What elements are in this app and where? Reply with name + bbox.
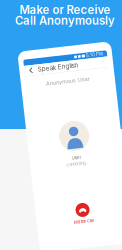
staticText: Connecting... xyxy=(64,162,86,166)
staticText: 5:10 PM xyxy=(96,55,113,60)
staticText: Speak English xyxy=(47,62,88,69)
staticText: Anonymous User xyxy=(53,78,97,84)
staticText: Call Anonymously xyxy=(15,14,115,27)
staticText: End the Call xyxy=(65,220,85,224)
staticText: Make or Receive xyxy=(19,3,110,17)
staticText: User xyxy=(70,155,80,160)
